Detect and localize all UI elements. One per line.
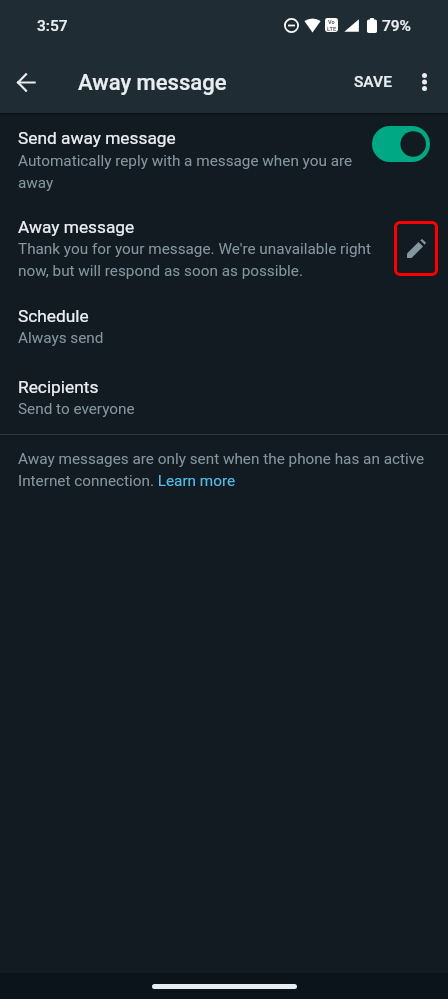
button[interactable]: Schedule (0, 290, 448, 361)
staticText: SAVE (354, 73, 392, 91)
staticText: Away messages are only sent when the pho… (18, 450, 430, 490)
button[interactable]: Edit away message (394, 221, 438, 276)
staticText: Recipients (18, 377, 99, 397)
button[interactable]: Away message (0, 197, 448, 272)
staticText: Vo (328, 19, 335, 26)
staticText: Thank you for your message. We're unavai… (18, 240, 390, 280)
button[interactable]: Recipients (0, 361, 448, 432)
staticText: LTE (327, 26, 337, 33)
button[interactable]: SAVE (342, 58, 404, 106)
button[interactable]: Back (4, 60, 48, 104)
staticText: 79% (382, 17, 412, 35)
staticText: Away message (18, 217, 135, 237)
button[interactable]: Send away message toggle (372, 126, 430, 162)
staticText: Send away message (18, 128, 176, 148)
staticText: Schedule (18, 306, 89, 326)
staticText: Away message (78, 70, 227, 96)
staticText: Automatically reply with a message when … (18, 152, 380, 192)
button[interactable]: Send away message (0, 113, 448, 197)
staticText: Always send (18, 329, 104, 347)
staticText: Send to everyone (18, 400, 135, 418)
staticText: 3:57 (37, 17, 68, 35)
button[interactable]: More options (402, 58, 446, 106)
